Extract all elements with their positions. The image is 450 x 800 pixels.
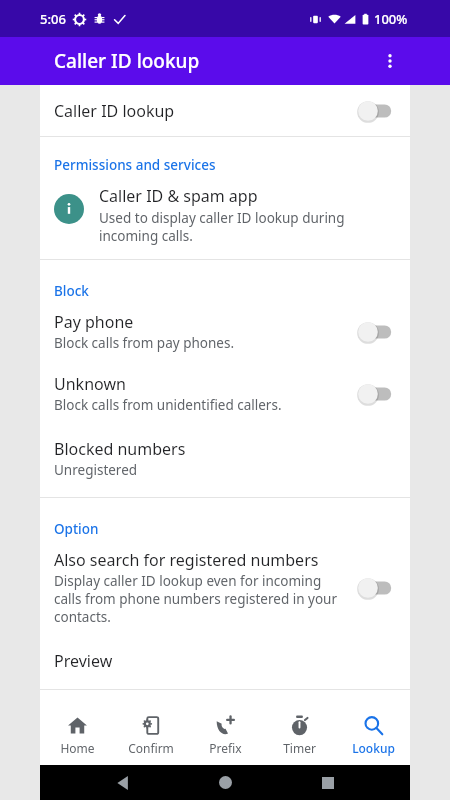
- staticText: Unregistered: [54, 461, 138, 479]
- staticText: Also search for registered numbers: [54, 549, 319, 571]
- staticText: 5:06: [40, 10, 66, 28]
- button[interactable]: Unknown: [40, 373, 410, 414]
- staticText: Preview: [54, 650, 113, 672]
- staticText: Prefix: [209, 740, 242, 756]
- staticText: 100%: [374, 10, 408, 28]
- button[interactable]: Confirm: [114, 707, 188, 765]
- staticText: Used to display caller ID lookup during …: [99, 209, 396, 245]
- button[interactable]: Home: [205, 765, 245, 800]
- staticText: Display caller ID lookup even for incomi…: [54, 572, 346, 626]
- staticText: Permissions and services: [54, 156, 216, 174]
- button[interactable]: Lookup: [336, 707, 410, 765]
- button[interactable]: Back: [103, 765, 143, 800]
- staticText: Caller ID lookup: [54, 100, 356, 122]
- button[interactable]: Also search for registered numbers: [40, 549, 410, 626]
- button[interactable]: Caller ID lookup: [40, 85, 410, 136]
- button[interactable]: Recent apps: [308, 765, 348, 800]
- button[interactable]: Toggle: [356, 320, 396, 344]
- staticText: Block: [54, 282, 89, 300]
- button[interactable]: Toggle: [356, 382, 396, 406]
- staticText: Unknown: [54, 373, 126, 395]
- staticText: Block calls from pay phones.: [54, 334, 234, 352]
- staticText: Caller ID lookup: [54, 48, 200, 74]
- button[interactable]: Prefix: [188, 707, 262, 765]
- staticText: Blocked numbers: [54, 438, 186, 460]
- staticText: Timer: [283, 740, 316, 756]
- staticText: Pay phone: [54, 311, 134, 333]
- staticText: Lookup: [352, 740, 395, 756]
- button[interactable]: Caller ID & spam app: [40, 174, 410, 259]
- button[interactable]: Toggle: [356, 576, 396, 600]
- button[interactable]: Pay phone: [40, 311, 410, 352]
- button[interactable]: Timer: [262, 707, 336, 765]
- button[interactable]: Home: [40, 707, 114, 765]
- button[interactable]: Toggle: [356, 99, 396, 123]
- staticText: Confirm: [128, 740, 174, 756]
- button[interactable]: Preview: [40, 650, 410, 689]
- staticText: Caller ID & spam app: [99, 185, 258, 207]
- staticText: Option: [54, 520, 99, 538]
- button[interactable]: More options: [370, 41, 410, 81]
- button[interactable]: Blocked numbers: [40, 438, 410, 497]
- staticText: Home: [60, 740, 95, 756]
- staticText: Block calls from unidentified callers.: [54, 396, 282, 414]
